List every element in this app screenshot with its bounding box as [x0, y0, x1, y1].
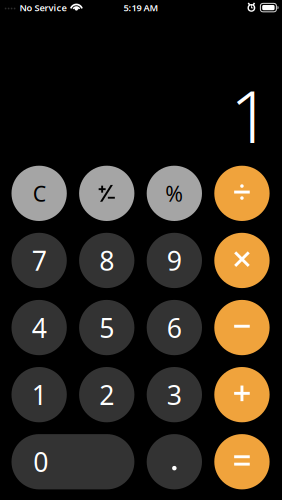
button[interactable]: 2 [79, 367, 134, 422]
button[interactable]: 6 [147, 300, 202, 355]
staticText: 1 [32, 377, 47, 412]
button[interactable]: 1 [11, 367, 67, 422]
staticText: 2 [99, 377, 114, 412]
staticText: 8 [99, 243, 114, 278]
button[interactable]: 5 [79, 300, 134, 355]
button[interactable]: 0 [11, 434, 134, 489]
button[interactable]: 3 [147, 367, 202, 422]
button[interactable]: 7 [11, 233, 67, 288]
staticText: 9 [167, 243, 182, 278]
button[interactable]: Equals [214, 434, 270, 489]
button[interactable]: Divide [214, 166, 270, 221]
button[interactable]: 9 [147, 233, 202, 288]
button[interactable]: 4 [11, 300, 67, 355]
button[interactable]: Multiply [214, 233, 270, 288]
staticText: 1 [230, 67, 271, 163]
button[interactable]: Plus minus [79, 166, 134, 221]
staticText: 3 [167, 377, 182, 412]
button[interactable]: 8 [79, 233, 134, 288]
staticText: No Service [19, 1, 66, 14]
staticText: 7 [32, 243, 47, 278]
button[interactable]: Decimal point [147, 434, 202, 489]
staticText: % [165, 179, 183, 207]
button[interactable]: Plus [214, 367, 270, 422]
staticText: C [33, 179, 46, 207]
staticText: 5 [99, 310, 114, 345]
button[interactable]: C [11, 166, 67, 221]
staticText: 0 [33, 444, 48, 479]
staticText: 6 [167, 310, 182, 345]
staticText: 4 [32, 310, 47, 345]
button[interactable]: Minus [214, 300, 270, 355]
staticText: 5:19 AM [123, 1, 158, 14]
button[interactable]: % [147, 166, 202, 221]
